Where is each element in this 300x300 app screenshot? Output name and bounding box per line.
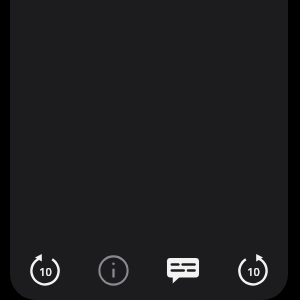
staticText: 10 (247, 264, 260, 279)
button[interactable]: Subtitles (148, 242, 218, 298)
button[interactable]: Forward 10 seconds (218, 242, 288, 298)
staticText: 10 (39, 264, 52, 279)
button[interactable]: Rewind 10 seconds (10, 242, 79, 298)
button[interactable]: Info (79, 242, 148, 298)
